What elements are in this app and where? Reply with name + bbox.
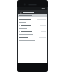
button[interactable]: Navigate up [18, 10, 47, 14]
button[interactable] [18, 30, 47, 33]
button[interactable] [18, 36, 47, 39]
button[interactable] [18, 27, 47, 30]
button[interactable] [18, 14, 47, 17]
button[interactable] [18, 33, 47, 36]
button[interactable] [18, 21, 47, 24]
button[interactable] [18, 24, 47, 27]
button[interactable]: Navigate up [19, 11, 22, 14]
button[interactable] [18, 18, 47, 21]
button[interactable] [18, 39, 47, 42]
